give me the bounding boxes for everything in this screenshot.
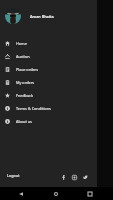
button[interactable]: Profile photo (5, 8, 21, 24)
button[interactable]: Logout (5, 171, 22, 180)
button[interactable]: Auction (0, 50, 97, 63)
button[interactable]: Instagram (69, 172, 80, 183)
staticText: Feedback (16, 93, 33, 98)
staticText: Place orders (16, 67, 39, 72)
staticText: Aman Bhatia (30, 14, 54, 19)
button[interactable]: Terms & Conditions (0, 102, 97, 115)
button[interactable]: Home (0, 37, 97, 50)
staticText: My orders (16, 80, 35, 85)
staticText: Terms & Conditions (16, 106, 51, 111)
staticText: Home (16, 41, 27, 46)
button[interactable]: Recent apps (83, 187, 96, 200)
button[interactable]: Twitter (80, 172, 91, 183)
staticText: Logout (7, 173, 20, 178)
button[interactable]: Back (14, 187, 27, 200)
staticText: About us (16, 119, 32, 124)
button[interactable]: Feedback (0, 89, 97, 102)
button[interactable]: Place orders (0, 63, 97, 76)
staticText: Auction (16, 54, 30, 59)
button[interactable]: About us (0, 115, 97, 128)
button[interactable]: Home (49, 187, 62, 200)
button[interactable]: Facebook (58, 172, 69, 183)
button[interactable]: My orders (0, 76, 97, 89)
